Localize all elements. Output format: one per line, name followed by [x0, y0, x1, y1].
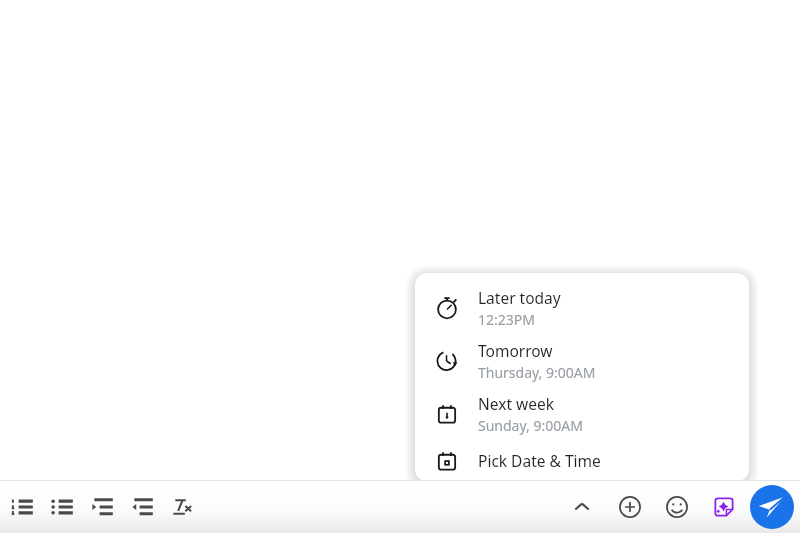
button[interactable]: Numbered list [2, 487, 42, 527]
staticText: Later today [478, 287, 561, 308]
button[interactable]: Clear formatting [162, 487, 202, 527]
button[interactable]: Expand [562, 487, 602, 527]
staticText: Pick Date & Time [478, 450, 601, 471]
button[interactable]: Later today [415, 281, 749, 334]
staticText: Sunday, 9:00AM [478, 416, 583, 435]
button[interactable]: Pick Date & Time [415, 440, 749, 481]
button[interactable]: Increase indent [82, 487, 122, 527]
button[interactable]: Emoji [657, 487, 697, 527]
button[interactable]: Tomorrow [415, 334, 749, 387]
staticText: 12:23PM [478, 310, 535, 329]
staticText: Next week [478, 393, 554, 414]
button[interactable]: Attach [610, 487, 650, 527]
staticText: Tomorrow [478, 340, 553, 361]
button[interactable]: Send [750, 485, 794, 529]
staticText: Thursday, 9:00AM [478, 363, 596, 382]
button[interactable]: Decrease indent [122, 487, 162, 527]
button[interactable]: Next week [415, 387, 749, 440]
button[interactable]: Bulleted list [42, 487, 82, 527]
button[interactable]: Sticker [704, 487, 744, 527]
